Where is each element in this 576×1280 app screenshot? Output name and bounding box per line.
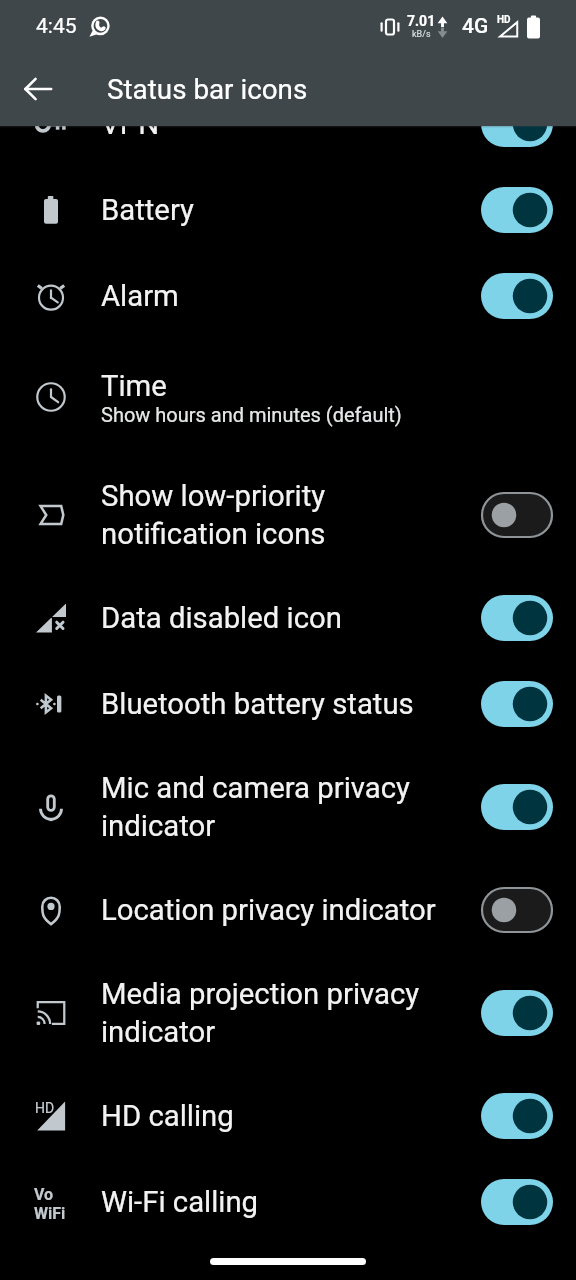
staticText: WiFi <box>34 1204 66 1219</box>
button[interactable]: VPN <box>0 81 576 167</box>
button[interactable]: Off <box>481 887 553 933</box>
button[interactable]: Battery <box>0 167 576 253</box>
staticText: Show low-priority notification icons <box>101 479 326 551</box>
staticText: Mic and camera privacy indicator <box>101 771 410 843</box>
staticText: Data disabled icon <box>101 601 342 635</box>
button[interactable]: On <box>481 990 553 1036</box>
staticText: Show hours and minutes (default) <box>101 403 402 426</box>
staticText: 4G <box>462 14 489 39</box>
button[interactable]: On <box>481 1179 553 1225</box>
button[interactable]: On <box>481 1093 553 1139</box>
staticText: HD <box>497 14 511 26</box>
staticText: Time <box>101 369 167 403</box>
button[interactable]: HD <box>0 1073 576 1159</box>
staticText: Status bar icons <box>107 73 308 106</box>
button[interactable]: On <box>481 681 553 727</box>
button[interactable]: On <box>481 784 553 830</box>
staticText: Wi-Fi calling <box>101 1185 259 1219</box>
button[interactable]: Media projection privacy indicator <box>0 953 576 1073</box>
button[interactable]: On <box>481 101 553 147</box>
button[interactable]: Data disabled icon <box>0 575 576 661</box>
button[interactable]: Back <box>0 52 76 126</box>
button[interactable]: Show low-priority notification icons <box>0 455 576 575</box>
staticText: VPN <box>101 107 160 141</box>
staticText: 7.01 <box>407 13 436 29</box>
staticText: Location privacy indicator <box>101 893 436 927</box>
button[interactable]: On <box>481 187 553 233</box>
button[interactable]: Location privacy indicator <box>0 867 576 953</box>
button[interactable]: Vo <box>0 1159 576 1245</box>
staticText: HD calling <box>101 1099 234 1133</box>
button[interactable]: Bluetooth battery status <box>0 661 576 747</box>
button[interactable]: Alarm <box>0 253 576 339</box>
staticText: Bluetooth battery status <box>101 687 414 721</box>
staticText: kB/s <box>412 29 431 40</box>
staticText: 4:45 <box>36 14 77 39</box>
staticText: Vo <box>34 1185 54 1204</box>
staticText: HD <box>35 1100 55 1116</box>
button[interactable]: Off <box>481 492 553 538</box>
button[interactable]: On <box>481 273 553 319</box>
button[interactable]: Mic and camera privacy indicator <box>0 747 576 867</box>
staticText: Alarm <box>101 279 179 313</box>
button[interactable]: On <box>481 595 553 641</box>
button[interactable]: Time <box>0 339 576 455</box>
staticText: Media projection privacy indicator <box>101 977 420 1049</box>
staticText: Battery <box>101 193 194 227</box>
